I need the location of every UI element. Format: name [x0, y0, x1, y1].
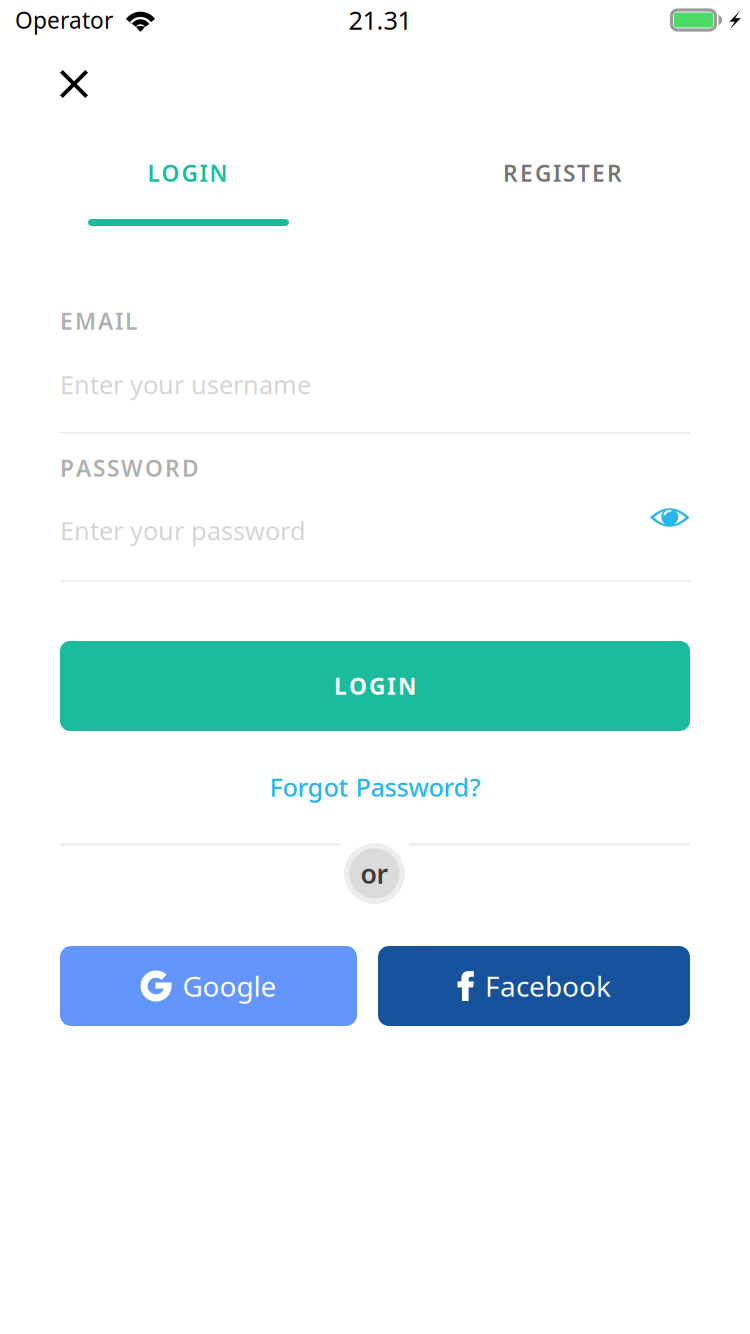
staticText: L O G I N	[334, 671, 416, 701]
staticText: R E G I S T E R	[503, 158, 622, 188]
staticText: P A S S W O R D	[60, 453, 199, 483]
button[interactable]: L O G I N	[0, 134, 375, 212]
staticText: L O G I N	[147, 158, 227, 188]
button[interactable]: Google	[60, 946, 357, 1026]
button[interactable]: Close	[49, 59, 99, 109]
staticText: Enter your username	[60, 368, 311, 401]
staticText: or	[360, 856, 388, 891]
button[interactable]: Forgot Password?	[245, 765, 505, 809]
staticText: E M A I L	[60, 306, 137, 336]
button[interactable]: L O G I N	[60, 641, 690, 731]
staticText: Operator	[15, 5, 113, 35]
staticText: Google	[182, 967, 276, 1005]
button[interactable]: Facebook	[378, 946, 690, 1026]
staticText: 21.31	[348, 3, 411, 37]
button[interactable]: R E G I S T E R	[375, 134, 750, 212]
staticText: Facebook	[485, 967, 611, 1005]
staticText: Forgot Password?	[269, 770, 480, 804]
staticText: Enter your password	[60, 514, 306, 547]
button[interactable]: Show password	[630, 497, 689, 538]
